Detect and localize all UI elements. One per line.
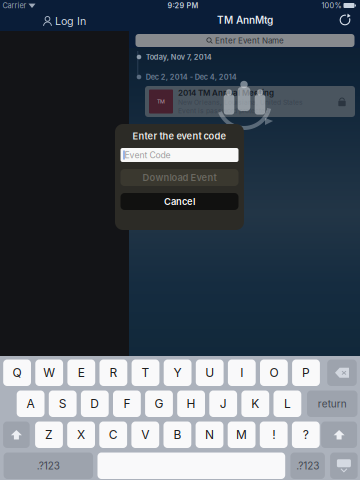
- staticText: Q: [13, 365, 22, 380]
- button[interactable]: Cancel: [120, 193, 238, 210]
- staticText: Cancel: [164, 196, 195, 207]
- staticText: T: [141, 365, 149, 380]
- button[interactable]: B: [163, 421, 191, 448]
- button[interactable]: Refresh: [338, 13, 352, 27]
- staticText: S: [59, 396, 67, 411]
- button[interactable]: Enter Event Name: [135, 34, 354, 47]
- staticText: D: [90, 396, 99, 411]
- staticText: R: [109, 365, 117, 380]
- staticText: Download Event: [142, 172, 216, 183]
- staticText: K: [251, 396, 259, 411]
- button[interactable]: V: [131, 421, 159, 448]
- button[interactable]: I: [228, 359, 256, 386]
- staticText: M: [236, 427, 247, 442]
- staticText: .?123: [37, 460, 60, 472]
- button[interactable]: W: [35, 359, 63, 386]
- staticText: Enter the event code: [132, 130, 226, 142]
- staticText: J: [220, 396, 227, 411]
- button[interactable]: T: [132, 359, 159, 386]
- button[interactable]: [321, 421, 357, 448]
- button[interactable]: Download Event: [120, 169, 238, 186]
- button[interactable]: R: [99, 359, 127, 386]
- staticText: TM: [157, 98, 165, 105]
- button[interactable]: [97, 452, 285, 479]
- button[interactable]: D: [81, 390, 109, 417]
- button[interactable]: .?123: [4, 452, 93, 479]
- staticText: P: [302, 365, 310, 380]
- button[interactable]: Log In: [0, 11, 129, 31]
- button[interactable]: !: [260, 421, 288, 448]
- staticText: C: [109, 427, 118, 442]
- staticText: U: [205, 365, 214, 380]
- staticText: Event Code: [124, 150, 170, 160]
- staticText: E: [78, 365, 85, 380]
- button[interactable]: P: [292, 359, 320, 386]
- staticText: Carrier: [2, 1, 26, 10]
- button[interactable]: .?123: [290, 452, 325, 479]
- staticText: Y: [174, 365, 182, 380]
- staticText: O: [269, 365, 278, 380]
- button[interactable]: C: [99, 421, 127, 448]
- button[interactable]: E: [67, 359, 95, 386]
- staticText: Enter Event Name: [215, 36, 284, 45]
- button[interactable]: A: [17, 390, 44, 417]
- staticText: Event is password protected: [178, 107, 269, 115]
- button[interactable]: X: [67, 421, 95, 448]
- button[interactable]: G: [145, 390, 173, 417]
- button[interactable]: return: [307, 390, 357, 417]
- staticText: 2014 TM Annual Meeting: [178, 88, 274, 98]
- button[interactable]: U: [196, 359, 224, 386]
- button[interactable]: [3, 421, 30, 448]
- button[interactable]: M: [228, 421, 255, 448]
- staticText: G: [154, 396, 163, 411]
- staticText: Today, Nov 7, 2014: [146, 53, 212, 61]
- staticText: 9:29 PM: [167, 1, 198, 10]
- staticText: return: [318, 398, 347, 410]
- button[interactable]: L: [273, 390, 301, 417]
- staticText: W: [43, 365, 55, 380]
- button[interactable]: Q: [3, 359, 31, 386]
- button[interactable]: [330, 452, 358, 479]
- staticText: X: [77, 427, 85, 442]
- button[interactable]: [327, 359, 357, 386]
- staticText: New Orleans, Louisiana, United States: [178, 98, 303, 106]
- staticText: H: [187, 396, 196, 411]
- staticText: V: [141, 427, 149, 442]
- button[interactable]: F: [113, 390, 141, 417]
- button[interactable]: TM: [145, 86, 355, 117]
- button[interactable]: N: [196, 421, 223, 448]
- button[interactable]: S: [49, 390, 77, 417]
- staticText: N: [205, 427, 214, 442]
- button[interactable]: ?: [292, 421, 320, 448]
- staticText: F: [123, 396, 130, 411]
- button[interactable]: Z: [35, 421, 63, 448]
- staticText: !: [272, 427, 275, 442]
- staticText: Dec 2, 2014 - Dec 4, 2014: [146, 73, 237, 81]
- staticText: ?: [303, 427, 309, 442]
- button[interactable]: O: [260, 359, 288, 386]
- staticText: B: [173, 427, 181, 442]
- staticText: 100%: [321, 1, 341, 10]
- staticText: Log In: [55, 14, 86, 27]
- button[interactable]: K: [241, 390, 269, 417]
- button[interactable]: J: [209, 390, 237, 417]
- staticText: A: [27, 396, 35, 411]
- staticText: Z: [45, 427, 53, 442]
- staticText: .?123: [296, 460, 319, 472]
- button[interactable]: H: [177, 390, 205, 417]
- staticText: L: [284, 396, 291, 411]
- staticText: TM AnnMtg: [217, 14, 273, 26]
- button[interactable]: Y: [164, 359, 191, 386]
- staticText: I: [240, 365, 243, 380]
